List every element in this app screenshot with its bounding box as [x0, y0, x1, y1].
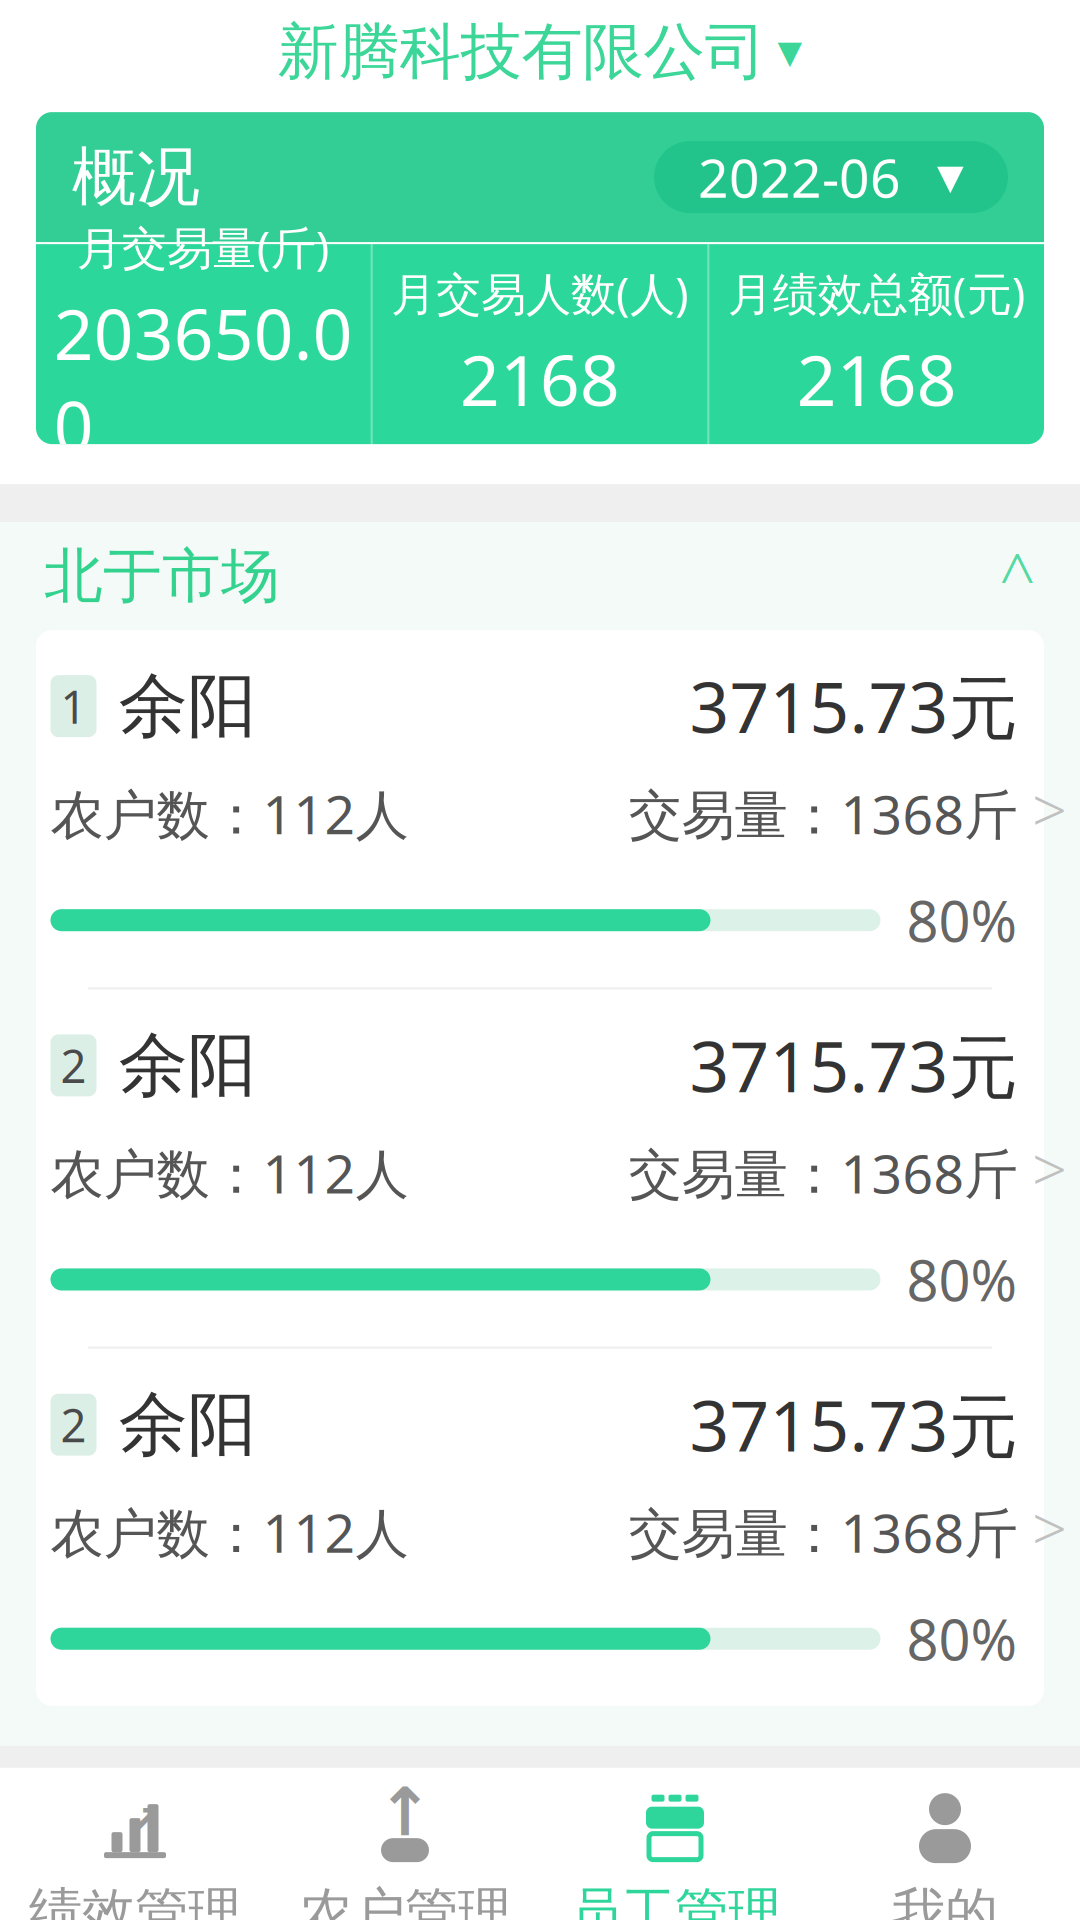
staticText: 2022-06 — [698, 142, 901, 212]
staticText: 绩效管理 — [29, 1880, 241, 1920]
staticText: 3715.73元 — [689, 660, 1017, 752]
staticText: 1 — [60, 676, 86, 736]
staticText: 80% — [906, 883, 1017, 957]
staticText: 北于市场 — [44, 540, 280, 612]
staticText: 3715.73元 — [689, 1379, 1017, 1471]
staticText: 农户数：112人 — [50, 778, 408, 849]
staticText: ↗ — [125, 1796, 163, 1848]
button[interactable]: 员工管理 — [540, 1768, 810, 1920]
button[interactable]: 新腾科技有限公司 — [237, 0, 842, 112]
staticText: 交易量：1368斤 — [628, 778, 1017, 849]
staticText: 新腾科技有限公司 — [277, 14, 765, 90]
staticText: 员工管理 — [569, 1880, 781, 1920]
staticText: 农户管理 — [299, 1880, 511, 1920]
staticText: > — [1032, 768, 1067, 849]
staticText: 2168 — [460, 333, 620, 425]
staticText: 余阳 — [118, 664, 256, 749]
staticText: 203650.00 — [54, 287, 353, 471]
staticText: 2 — [60, 1395, 86, 1455]
staticText: > — [1032, 1127, 1067, 1209]
staticText: 余阳 — [118, 1023, 256, 1108]
staticText: 农户数：112人 — [50, 1497, 408, 1567]
staticText: ▼ — [937, 157, 964, 197]
staticText: 月交易量(斤) — [77, 217, 330, 277]
staticText: ▼ — [777, 34, 802, 70]
staticText: 2168 — [797, 333, 957, 425]
button[interactable]: ↗ — [0, 1768, 270, 1920]
button[interactable]: 我的 — [810, 1768, 1080, 1920]
staticText: ↑ — [377, 1774, 433, 1850]
staticText: > — [1032, 1486, 1067, 1568]
staticText: 余阳 — [118, 1382, 256, 1467]
staticText: 3715.73元 — [689, 1019, 1017, 1111]
staticText: 80% — [906, 1601, 1017, 1676]
staticText: 交易量：1368斤 — [628, 1137, 1017, 1208]
staticText: 概况 — [72, 138, 200, 216]
staticText: 我的 — [892, 1880, 998, 1920]
button[interactable]: 1 — [0, 630, 1080, 987]
button[interactable]: ↑ — [270, 1768, 540, 1920]
button[interactable]: 北于市场 — [0, 522, 1080, 630]
staticText: 2 — [60, 1035, 86, 1095]
staticText: 交易量：1368斤 — [628, 1497, 1017, 1567]
staticText: 农户数：112人 — [50, 1137, 408, 1208]
button[interactable]: 2 — [0, 989, 1080, 1347]
button[interactable]: 2022-06 — [654, 141, 1008, 213]
staticText: 月绩效总额(元) — [728, 263, 1026, 323]
staticText: ^ — [999, 534, 1036, 619]
button[interactable]: 2 — [0, 1349, 1080, 1706]
staticText: 80% — [906, 1242, 1017, 1317]
staticText: 月交易人数(人) — [391, 263, 689, 323]
